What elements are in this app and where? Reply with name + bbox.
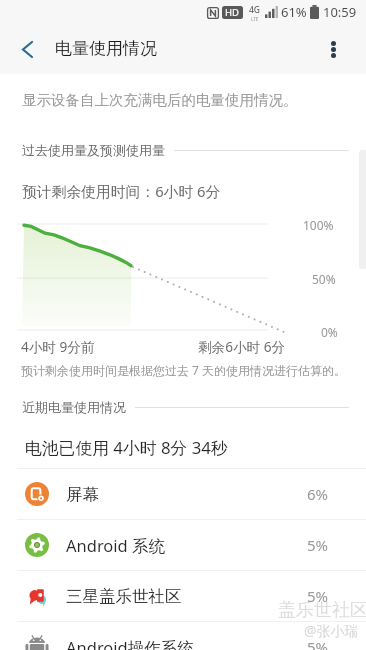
staticText: 100% (303, 217, 334, 233)
staticText: 近期电量使用情况 (22, 399, 126, 415)
staticText: 三星盖乐世社区 (66, 586, 182, 607)
staticText: LTE (251, 16, 259, 22)
button[interactable]: Android操作系统 (0, 622, 366, 650)
staticText: 5% (307, 586, 329, 606)
button[interactable]: Back (5, 27, 49, 71)
staticText: 10:59 (323, 3, 357, 21)
staticText: 电量使用情况 (55, 38, 157, 59)
button[interactable]: 三星盖乐世社区 (0, 571, 366, 621)
staticText: 预计剩余使用时间是根据您过去 7 天的使用情况进行估算的。 (21, 362, 347, 378)
staticText: 5% (307, 535, 329, 555)
staticText: 4小时 9分前 (21, 337, 95, 356)
button[interactable]: More options (311, 27, 355, 71)
staticText: 50% (312, 271, 336, 287)
staticText: HD (225, 6, 240, 19)
staticText: 预计剩余使用时间：6小时 6分 (22, 181, 221, 201)
button[interactable]: 屏幕 (0, 469, 366, 519)
staticText: 电池已使用 4小时 8分 34秒 (25, 436, 228, 459)
staticText: 6% (307, 484, 329, 504)
staticText: 显示设备自上次充满电后的电量使用情况。 (22, 91, 298, 109)
staticText: 0% (321, 324, 338, 340)
staticText: @张小瑞 (304, 621, 359, 640)
staticText: 剩余6小时 6分 (198, 337, 286, 356)
staticText: 过去使用量及预测使用量 (22, 142, 165, 158)
staticText: 盖乐世社区 (278, 599, 366, 622)
staticText: 4G (249, 4, 261, 16)
staticText: 61% (281, 3, 307, 21)
staticText: Android 系统 (66, 534, 166, 557)
button[interactable]: Android 系统 (0, 520, 366, 570)
staticText: 屏幕 (66, 484, 99, 505)
staticText: 5% (307, 637, 329, 650)
staticText: Android操作系统 (66, 636, 194, 650)
